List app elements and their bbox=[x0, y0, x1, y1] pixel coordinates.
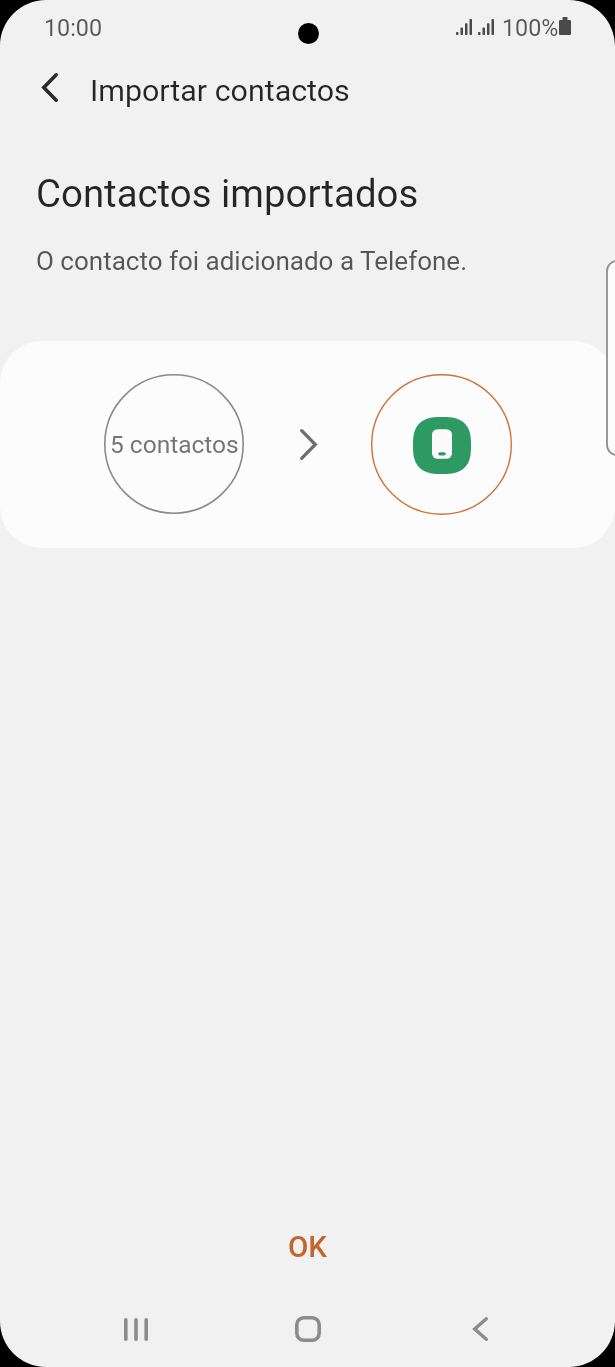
button[interactable]: Back bbox=[436, 1285, 524, 1367]
staticText: Importar contactos bbox=[90, 73, 350, 109]
staticText: 10:00 bbox=[44, 14, 103, 41]
button[interactable]: Home bbox=[264, 1285, 352, 1367]
button[interactable] bbox=[0, 341, 615, 548]
staticText: O contacto foi adicionado a Telefone. bbox=[36, 246, 467, 276]
staticText: Contactos importados bbox=[36, 171, 419, 216]
button[interactable]: Back bbox=[24, 61, 76, 113]
staticText: 5 contactos bbox=[110, 430, 239, 459]
button[interactable]: Recent apps bbox=[92, 1285, 180, 1367]
button[interactable]: OK bbox=[250, 1215, 365, 1279]
staticText: OK bbox=[288, 1230, 327, 1265]
staticText: 100% bbox=[502, 14, 559, 41]
